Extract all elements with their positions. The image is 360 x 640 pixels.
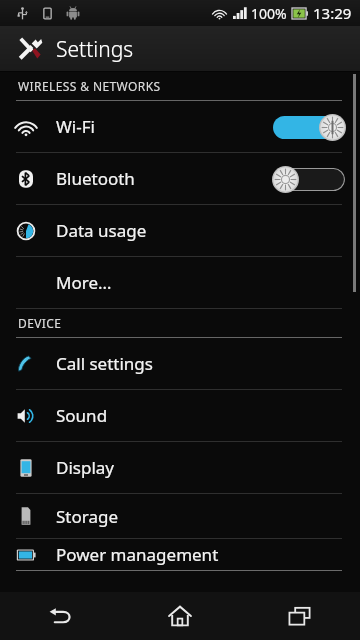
staticText: WIRELESS & NETWORKS <box>18 78 161 94</box>
button[interactable]: Sound <box>0 390 360 441</box>
staticText: Call settings <box>56 352 153 375</box>
staticText: Settings <box>56 35 134 64</box>
staticText: More… <box>56 271 112 294</box>
button[interactable]: Back <box>0 592 120 640</box>
button[interactable]: Storage <box>0 494 360 538</box>
staticText: Storage <box>56 505 119 528</box>
staticText: 13:29 <box>313 3 352 23</box>
button[interactable]: Turn off <box>272 113 346 141</box>
button[interactable]: Power management <box>0 539 360 570</box>
button[interactable]: Turn on <box>272 165 346 193</box>
button[interactable]: Wi-Fi <box>0 101 360 152</box>
button[interactable]: Home <box>120 592 240 640</box>
staticText: Power management <box>56 543 219 566</box>
staticText: Bluetooth <box>56 167 135 190</box>
staticText: Wi-Fi <box>56 115 95 138</box>
staticText: DEVICE <box>18 315 62 331</box>
staticText: 100% <box>251 4 287 23</box>
button[interactable]: Bluetooth <box>0 153 360 204</box>
button[interactable]: More… <box>0 257 360 308</box>
button[interactable]: Recent apps <box>240 592 360 640</box>
staticText: Sound <box>56 404 108 427</box>
button[interactable]: Data usage <box>0 205 360 256</box>
button[interactable]: Call settings <box>0 338 360 389</box>
staticText: Data usage <box>56 219 147 242</box>
staticText: Display <box>56 456 114 479</box>
button[interactable]: Display <box>0 442 360 493</box>
